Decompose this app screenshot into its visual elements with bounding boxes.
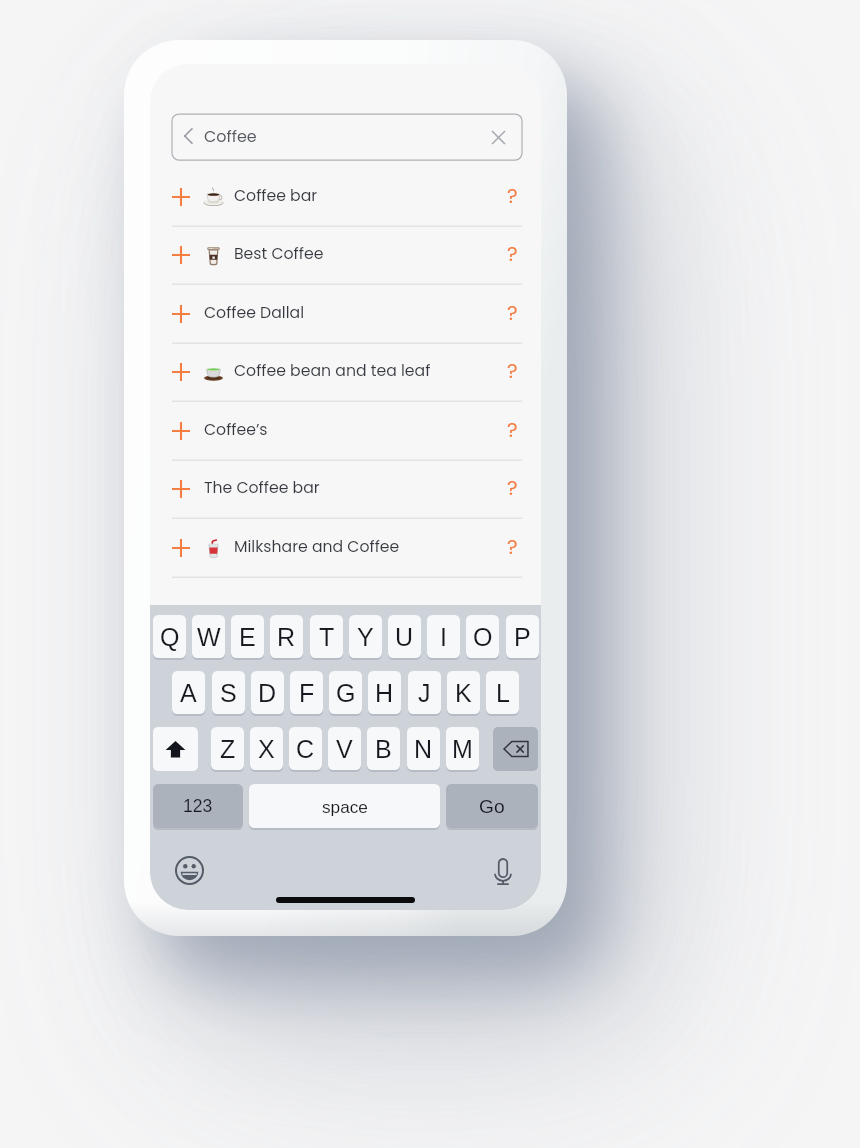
- staticText: V: [336, 735, 353, 763]
- staticText: E: [239, 623, 256, 651]
- staticText: ?: [507, 182, 518, 210]
- button[interactable]: Voice input: [495, 859, 511, 885]
- staticText: M: [452, 735, 473, 763]
- staticText: G: [336, 679, 356, 707]
- staticText: F: [299, 679, 315, 707]
- staticText: space: [322, 797, 368, 816]
- button[interactable]: Coffee’s: [172, 402, 522, 461]
- staticText: B: [375, 735, 392, 763]
- staticText: S: [220, 679, 237, 707]
- staticText: ?: [507, 416, 518, 444]
- staticText: P: [514, 623, 531, 651]
- button[interactable]: space: [249, 784, 440, 830]
- staticText: N: [414, 735, 433, 763]
- staticText: J: [418, 679, 431, 707]
- button[interactable]: B: [367, 727, 400, 772]
- staticText: ?: [507, 299, 518, 327]
- button[interactable]: A: [172, 671, 205, 716]
- button[interactable]: D: [251, 671, 284, 716]
- button[interactable]: F: [290, 671, 323, 716]
- staticText: Coffee Dallal: [204, 302, 304, 324]
- button[interactable]: M: [446, 727, 479, 772]
- staticText: Go: [479, 796, 505, 817]
- staticText: ?: [507, 533, 518, 561]
- button[interactable]: Shift: [153, 727, 198, 771]
- button[interactable]: C: [289, 727, 322, 772]
- button[interactable]: X: [250, 727, 283, 772]
- staticText: The Coffee bar: [204, 477, 320, 499]
- button[interactable]: 123: [153, 784, 243, 830]
- button[interactable]: Best Coffee: [172, 226, 522, 285]
- staticText: Milkshare and Coffee: [234, 536, 400, 558]
- button[interactable]: Milkshare and Coffee: [172, 519, 522, 578]
- staticText: ?: [507, 240, 518, 268]
- staticText: Coffee’s: [204, 419, 268, 441]
- staticText: Z: [220, 735, 236, 763]
- staticText: Y: [357, 623, 374, 651]
- staticText: I: [440, 623, 447, 651]
- staticText: O: [473, 623, 493, 651]
- staticText: ?: [507, 357, 518, 385]
- other: Clear search: [492, 131, 505, 144]
- staticText: C: [296, 735, 315, 763]
- staticText: Best Coffee: [234, 243, 324, 265]
- button[interactable]: V: [328, 727, 361, 772]
- button[interactable]: R: [270, 615, 303, 660]
- button[interactable]: Z: [211, 727, 244, 772]
- staticText: A: [180, 679, 197, 707]
- staticText: K: [455, 679, 472, 707]
- button[interactable]: T: [310, 615, 343, 660]
- staticText: X: [258, 735, 275, 763]
- staticText: Q: [160, 623, 180, 651]
- button[interactable]: Q: [153, 615, 186, 660]
- button[interactable]: I: [427, 615, 460, 660]
- staticText: ?: [507, 474, 518, 502]
- button[interactable]: P: [506, 615, 539, 660]
- staticText: T: [319, 623, 335, 651]
- button[interactable]: The Coffee bar: [172, 460, 522, 519]
- staticText: 123: [183, 796, 213, 816]
- button[interactable]: L: [486, 671, 519, 716]
- button[interactable]: Coffee Dallal: [172, 285, 522, 344]
- button[interactable]: O: [466, 615, 499, 660]
- staticText: Coffee bar: [234, 185, 318, 207]
- staticText: D: [258, 679, 277, 707]
- button[interactable]: S: [212, 671, 245, 716]
- button[interactable]: Go: [446, 784, 538, 830]
- staticText: Coffee bean and tea leaf: [234, 360, 431, 382]
- staticText: R: [277, 623, 296, 651]
- button[interactable]: Backspace: [493, 727, 538, 771]
- button[interactable]: K: [447, 671, 480, 716]
- staticText: L: [496, 679, 510, 707]
- button[interactable]: Coffee bean and tea leaf: [172, 343, 522, 402]
- staticText: Coffee: [204, 125, 257, 147]
- staticText: U: [395, 623, 414, 651]
- button[interactable]: E: [231, 615, 264, 660]
- button[interactable]: H: [368, 671, 401, 716]
- button[interactable]: G: [329, 671, 362, 716]
- button[interactable]: W: [192, 615, 225, 660]
- button[interactable]: N: [407, 727, 440, 772]
- button[interactable]: Y: [349, 615, 382, 660]
- button[interactable]: J: [408, 671, 441, 716]
- button[interactable]: Coffee bar: [172, 168, 522, 227]
- staticText: H: [375, 679, 394, 707]
- staticText: W: [197, 623, 221, 651]
- button[interactable]: Emoji keyboard: [175, 856, 204, 885]
- button[interactable]: Coffee: [172, 114, 522, 160]
- button[interactable]: U: [388, 615, 421, 660]
